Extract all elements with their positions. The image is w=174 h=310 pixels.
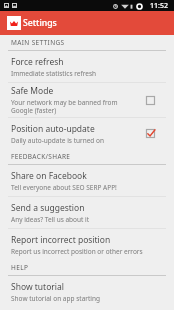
staticText: Immediate statistics refresh — [11, 69, 97, 78]
button[interactable]: Report incorrect position — [0, 229, 174, 260]
button[interactable]: Show tutorial — [0, 276, 174, 307]
staticText: Any ideas? Tell us about it — [11, 215, 90, 224]
staticText: Position auto-update — [11, 123, 95, 135]
staticText: Show tutorial — [11, 281, 64, 293]
staticText: Tell everyone about SEO SERP APP! — [11, 183, 117, 192]
other: App icon — [7, 16, 21, 30]
staticText: Daily auto-update is turned on — [11, 136, 104, 145]
button[interactable]: Send a suggestion — [0, 197, 174, 229]
button[interactable]: Safe Mode — [0, 83, 174, 118]
staticText: Send a suggestion — [11, 202, 85, 214]
staticText: Report us incorrect position or other er… — [11, 247, 143, 256]
button[interactable]: Force refresh — [0, 51, 174, 83]
staticText: Safe Mode — [11, 85, 54, 97]
staticText: 11:52 — [150, 1, 168, 11]
staticText: HELP — [11, 263, 29, 272]
staticText: Share on Facebook — [11, 170, 87, 182]
button[interactable]: Share on Facebook — [0, 165, 174, 197]
staticText: Your network may be banned from Google (… — [11, 98, 138, 115]
staticText: Force refresh — [11, 56, 64, 68]
staticText: Settings — [23, 17, 57, 29]
button[interactable]: App icon — [0, 11, 174, 35]
staticText: Report incorrect position — [11, 234, 111, 246]
staticText: FEEDBACK/SHARE — [11, 152, 71, 161]
staticText: MAIN SETTINGS — [11, 38, 65, 47]
button[interactable]: Position auto-update — [0, 118, 174, 149]
staticText: Show tutorial on app starting — [11, 294, 101, 303]
